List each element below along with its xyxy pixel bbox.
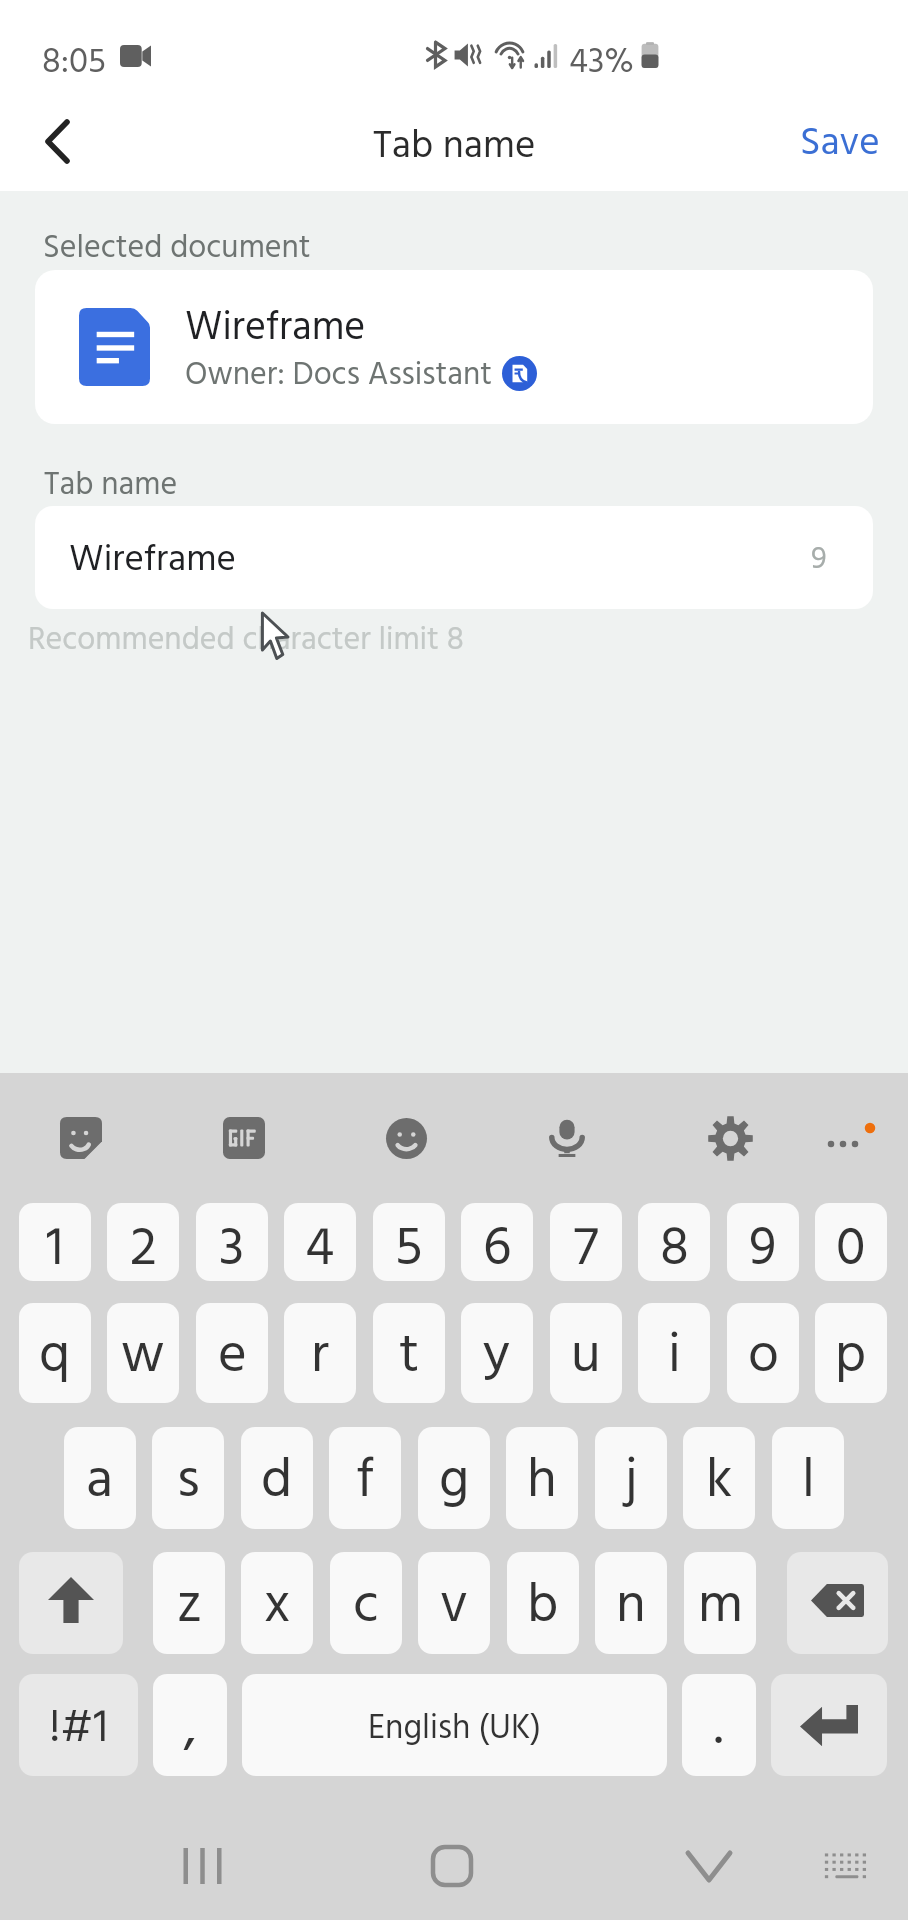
button[interactable]: 2	[107, 1203, 179, 1281]
staticText: 4	[305, 1207, 335, 1281]
button[interactable]: 7	[550, 1203, 622, 1281]
button[interactable]: y	[461, 1303, 533, 1403]
button[interactable]: a	[64, 1427, 136, 1529]
button[interactable]: Wireframe	[35, 270, 873, 424]
button[interactable]: 4	[284, 1203, 356, 1281]
staticText: f	[356, 1438, 375, 1526]
button[interactable]: h	[506, 1427, 578, 1529]
button[interactable]: Change keyboard	[806, 1826, 886, 1906]
button[interactable]: Wireframe	[35, 506, 873, 609]
button[interactable]: m	[684, 1552, 756, 1654]
button[interactable]: i	[638, 1303, 710, 1403]
button[interactable]: !#1	[19, 1674, 138, 1776]
button[interactable]: Backspace	[787, 1552, 888, 1654]
staticText: d	[261, 1438, 293, 1526]
staticText: i	[668, 1313, 681, 1401]
staticText: Tab name	[373, 116, 536, 178]
staticText: !#1	[49, 1692, 109, 1766]
staticText: p	[835, 1313, 867, 1401]
staticText: s	[177, 1438, 200, 1526]
staticText: j	[625, 1438, 638, 1526]
button[interactable]: e	[196, 1303, 268, 1403]
staticText: 3	[219, 1207, 245, 1281]
staticText: English (UK)	[368, 1702, 542, 1756]
button[interactable]: Settings	[695, 1103, 765, 1173]
button[interactable]: Recent apps	[162, 1826, 242, 1906]
staticText: 1	[46, 1207, 64, 1281]
button[interactable]: p	[815, 1303, 887, 1403]
staticText: .	[714, 1685, 724, 1773]
button[interactable]: Back	[19, 103, 95, 179]
staticText: k	[706, 1438, 733, 1526]
button[interactable]: Enter	[771, 1674, 887, 1776]
staticText: c	[353, 1563, 379, 1651]
button[interactable]: z	[153, 1552, 225, 1654]
staticText: u	[571, 1313, 601, 1401]
button[interactable]: .	[682, 1674, 756, 1776]
staticText: v	[440, 1563, 468, 1651]
button[interactable]: o	[727, 1303, 799, 1403]
staticText: 7	[574, 1207, 599, 1281]
staticText: 2	[130, 1207, 157, 1281]
button[interactable]: Shift	[19, 1552, 123, 1654]
staticText: m	[698, 1563, 743, 1651]
button[interactable]: c	[330, 1552, 402, 1654]
button[interactable]: 5	[373, 1203, 445, 1281]
button[interactable]: Hide keyboard	[669, 1826, 749, 1906]
button[interactable]: b	[507, 1552, 579, 1654]
button[interactable]: 0	[815, 1203, 887, 1281]
button[interactable]: r	[284, 1303, 356, 1403]
button[interactable]: More options	[816, 1103, 886, 1173]
staticText: r	[311, 1313, 329, 1401]
button[interactable]: l	[772, 1427, 844, 1529]
staticText: a	[86, 1438, 114, 1526]
staticText: g	[439, 1438, 470, 1526]
staticText: q	[39, 1313, 71, 1401]
button[interactable]: 6	[461, 1203, 533, 1281]
button[interactable]: Stickers	[46, 1103, 116, 1173]
button[interactable]: t	[373, 1303, 445, 1403]
staticText: 6	[483, 1207, 512, 1281]
button[interactable]: s	[152, 1427, 224, 1529]
button[interactable]: q	[19, 1303, 91, 1403]
staticText: n	[616, 1563, 646, 1651]
staticText: 0	[836, 1207, 866, 1281]
button[interactable]: English (UK)	[242, 1674, 667, 1776]
button[interactable]: ,	[153, 1674, 227, 1776]
button[interactable]: n	[595, 1552, 667, 1654]
button[interactable]: Save	[786, 101, 894, 187]
staticText: e	[218, 1313, 247, 1401]
button[interactable]: u	[550, 1303, 622, 1403]
staticText: Save	[800, 113, 880, 175]
button[interactable]: Emoji	[371, 1103, 441, 1173]
staticText: y	[483, 1313, 511, 1401]
staticText: t	[399, 1313, 420, 1401]
staticText: Selected document	[43, 223, 311, 274]
button[interactable]: 9	[727, 1203, 799, 1281]
staticText: 5	[395, 1207, 423, 1281]
button[interactable]: GIF	[209, 1103, 279, 1173]
staticText: x	[264, 1563, 291, 1651]
staticText: 9	[811, 535, 827, 585]
button[interactable]: k	[683, 1427, 755, 1529]
staticText: b	[527, 1563, 559, 1651]
staticText: 8:05	[42, 35, 106, 91]
button[interactable]: w	[107, 1303, 179, 1403]
button[interactable]: Voice input	[532, 1103, 602, 1173]
button[interactable]: j	[595, 1427, 667, 1529]
button[interactable]: 8	[638, 1203, 710, 1281]
button[interactable]: d	[241, 1427, 313, 1529]
staticText: Owner: Docs Assistant	[185, 350, 493, 401]
staticText: ,	[184, 1685, 197, 1773]
staticText: Tab name	[44, 460, 178, 511]
button[interactable]: 1	[19, 1203, 91, 1281]
button[interactable]: v	[418, 1552, 490, 1654]
button[interactable]: x	[241, 1552, 313, 1654]
staticText: Wireframe	[69, 531, 236, 590]
staticText: Recommended character limit 8	[28, 615, 464, 666]
staticText: z	[177, 1563, 202, 1651]
button[interactable]: 3	[196, 1203, 268, 1281]
button[interactable]: g	[418, 1427, 490, 1529]
button[interactable]: Home	[412, 1826, 492, 1906]
button[interactable]: f	[329, 1427, 401, 1529]
